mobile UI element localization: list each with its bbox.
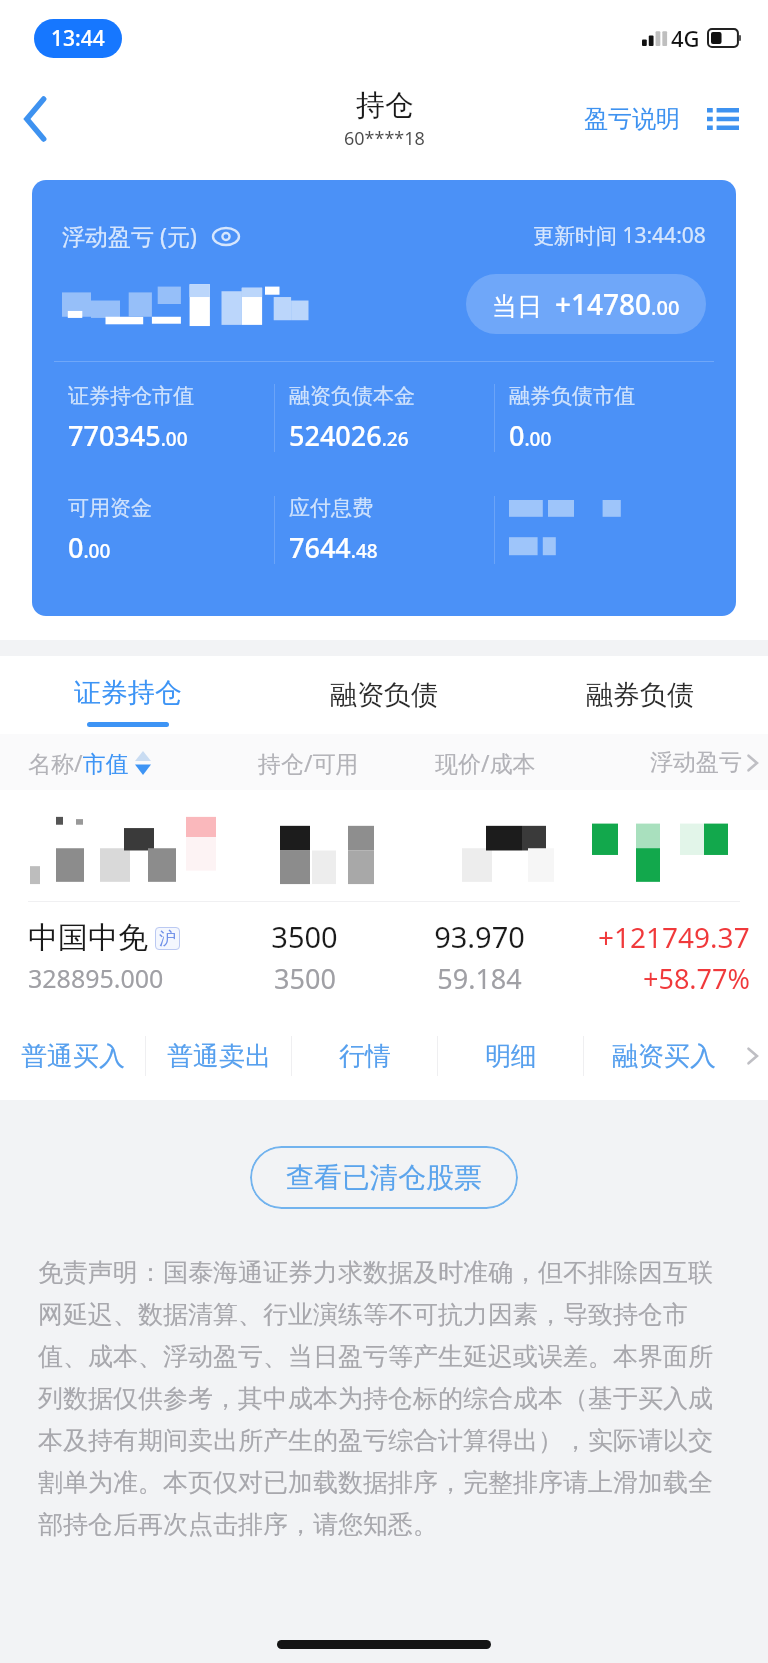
staticText: 0.00 [68, 529, 111, 566]
staticText: 770345.00 [68, 417, 188, 454]
staticText: 明细 [485, 1040, 537, 1073]
button[interactable]: Menu [700, 96, 746, 142]
staticText: 现价/成本 [435, 747, 536, 778]
staticText: 13:44 [51, 24, 105, 53]
button[interactable]: 盈亏说明 [580, 94, 684, 144]
staticText: 中国中免 [28, 919, 148, 957]
staticText: 应付息费 [289, 495, 373, 521]
staticText: 浮动盈亏 [650, 748, 742, 777]
button[interactable]: 普通买入 [0, 1012, 145, 1100]
staticText: +58.77% [643, 960, 750, 997]
staticText: 4G [671, 23, 700, 53]
staticText: 328895.000 [28, 961, 164, 995]
staticText: 沪 [159, 928, 176, 949]
staticText: 免责声明：国泰海通证券力求数据及时准确，但不排除因互联网延迟、数据清算、行业演练… [38, 1257, 730, 1541]
button[interactable]: 浮动盈亏 [574, 748, 768, 777]
staticText: 93.970 [434, 917, 525, 956]
button[interactable]: 行情 [292, 1012, 437, 1100]
button[interactable]: 中国中免 [0, 902, 768, 1012]
staticText: 3500 [274, 960, 336, 997]
staticText: 可用资金 [68, 495, 152, 521]
staticText: 融资负债本金 [289, 383, 415, 409]
staticText: 60****18 [344, 126, 425, 151]
staticText: 融券负债市值 [509, 383, 635, 409]
staticText: 融资负债 [330, 678, 438, 712]
staticText: 浮动盈亏 (元) [62, 220, 197, 251]
staticText: 证券持仓市值 [68, 383, 194, 409]
button[interactable]: Back [0, 83, 72, 155]
staticText: 7644.48 [289, 529, 378, 566]
staticText: 证券持仓 [74, 676, 182, 710]
staticText: +121749.37 [598, 918, 750, 956]
staticText: 0.00 [509, 417, 552, 454]
button[interactable]: 名称/市值 [28, 747, 220, 778]
button[interactable]: 融资负债 [256, 656, 512, 734]
button[interactable]: 查看已清仓股票 [250, 1146, 518, 1209]
button[interactable]: 普通卖出 [146, 1012, 291, 1100]
staticText: 524026.26 [289, 417, 409, 454]
staticText: 普通买入 [21, 1040, 125, 1073]
button[interactable]: 当日 +14780.00 [466, 274, 706, 334]
staticText: 融券负债 [586, 678, 694, 712]
button[interactable]: 明细 [438, 1012, 583, 1100]
staticText: 盈亏说明 [584, 104, 680, 134]
staticText: 3500 [271, 917, 338, 956]
staticText: 当日 +14780.00 [492, 285, 680, 323]
staticText: 59.184 [437, 960, 522, 997]
button[interactable]: 证券持仓 [0, 656, 256, 734]
button[interactable]: Toggle visibility [211, 221, 241, 251]
button[interactable]: 融资买入 [584, 1012, 744, 1100]
staticText: 查看已清仓股票 [286, 1160, 482, 1195]
button[interactable]: 融券负债 [512, 656, 768, 734]
staticText: 行情 [339, 1040, 391, 1073]
staticText: 普通卖出 [167, 1040, 271, 1073]
staticText: 持仓/可用 [258, 747, 359, 778]
staticText: 融资买入 [612, 1040, 716, 1073]
staticText: 更新时间 13:44:08 [533, 221, 706, 250]
staticText: 名称/市值 [28, 747, 129, 778]
staticText: 持仓 [356, 87, 414, 124]
